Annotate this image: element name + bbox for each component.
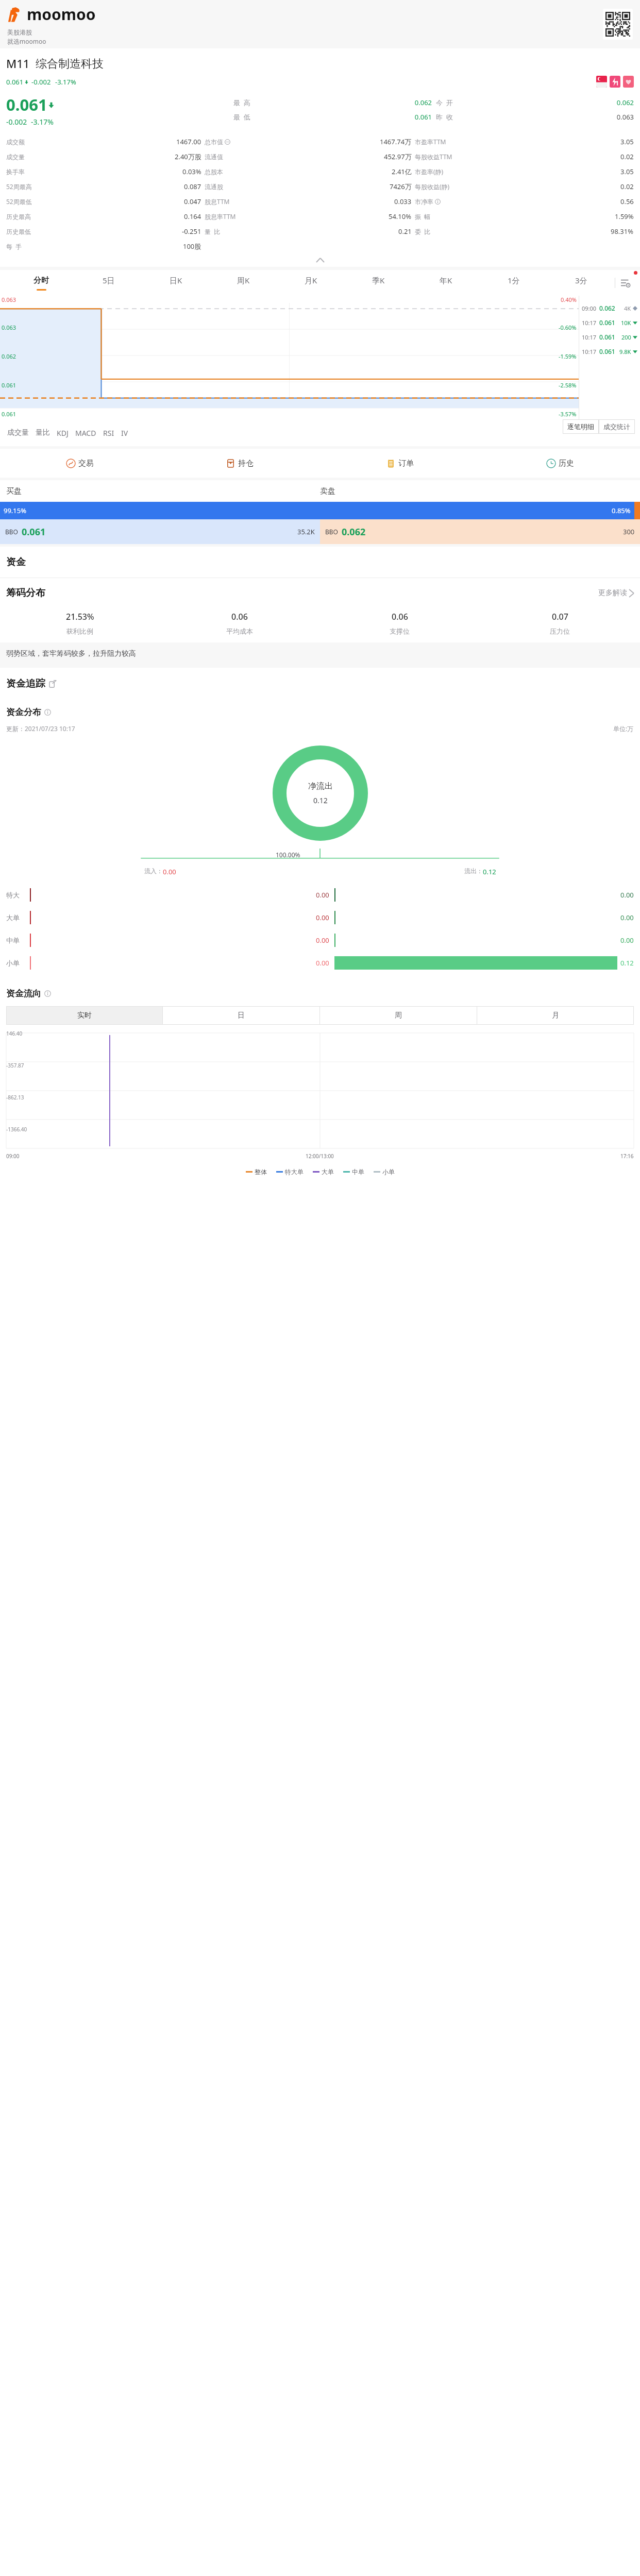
button[interactable]: BBO xyxy=(320,519,640,544)
staticText: 0.85% xyxy=(612,506,631,515)
button[interactable]: 日 xyxy=(163,1006,319,1025)
staticText: 0.00 xyxy=(316,936,329,945)
button[interactable]: 99.15% xyxy=(0,502,634,519)
button[interactable]: 10:17 xyxy=(582,344,637,359)
staticText: 0.56 xyxy=(620,197,634,206)
staticText: -1366.40 xyxy=(6,1126,27,1133)
staticText: 小单 xyxy=(382,1168,395,1176)
button[interactable]: 实时 xyxy=(6,1006,162,1025)
staticText: -0.002 xyxy=(6,117,27,127)
staticText: 0.061 xyxy=(599,347,615,355)
button[interactable]: 周K xyxy=(210,270,277,296)
button[interactable]: 持仓 xyxy=(160,449,319,478)
staticText: 净流出 xyxy=(308,781,333,791)
button[interactable]: IV xyxy=(121,428,135,438)
staticText: 0.062 xyxy=(342,526,366,538)
button[interactable]: 大单 xyxy=(313,1168,334,1176)
button[interactable]: 订单 xyxy=(319,449,480,478)
staticText: -0.002 xyxy=(31,77,51,87)
button[interactable]: 中单 xyxy=(343,1168,364,1176)
button[interactable]: KDJ xyxy=(57,428,75,438)
button[interactable]: 月 xyxy=(477,1006,634,1025)
button[interactable]: 10:17 xyxy=(582,330,637,344)
button[interactable]: BBO xyxy=(0,519,320,544)
staticText: 0.033 xyxy=(394,197,412,206)
staticText: 0.061 xyxy=(599,318,615,327)
button[interactable]: 历史 xyxy=(480,449,640,478)
staticText: 0.02 xyxy=(620,152,634,161)
staticText: 100股 xyxy=(183,242,201,251)
staticText: 0.062 xyxy=(2,352,16,360)
staticText: 2.41亿 xyxy=(392,167,412,176)
staticText: 美股港股 xyxy=(7,28,32,36)
staticText: 特大单 xyxy=(285,1168,304,1176)
staticText: 卖盘 xyxy=(320,486,634,496)
button[interactable]: 成交统计 xyxy=(599,419,635,434)
staticText: 日 xyxy=(238,1011,245,1020)
staticText: MACD xyxy=(75,428,96,438)
button[interactable]: 日K xyxy=(142,270,210,296)
staticText: 300 xyxy=(623,527,635,536)
button[interactable]: 10:17 xyxy=(582,315,637,330)
button[interactable]: 小单 xyxy=(374,1168,395,1176)
staticText: BBO xyxy=(325,528,338,536)
button[interactable]: 季K xyxy=(345,270,412,296)
staticText: 资金流向 xyxy=(6,988,41,999)
staticText: -357.87 xyxy=(6,1062,24,1069)
staticText: -2.58% xyxy=(559,381,577,389)
staticText: 0.063 xyxy=(535,112,634,122)
staticText: 量比 xyxy=(36,428,50,437)
button[interactable]: 年K xyxy=(412,270,480,296)
button[interactable]: 分时 xyxy=(7,270,75,296)
staticText: -3.17% xyxy=(55,77,76,87)
staticText: 54.10% xyxy=(389,212,412,221)
staticText: 0.061 xyxy=(2,381,16,389)
button[interactable]: RSI xyxy=(103,428,121,438)
staticText: 0.047 xyxy=(184,197,201,206)
staticText: 获利比例 xyxy=(66,627,93,635)
staticText: RSI xyxy=(103,428,114,438)
staticText: 0.21 xyxy=(398,227,412,236)
staticText: 0.40% xyxy=(561,296,577,303)
button[interactable]: 3分 xyxy=(547,270,615,296)
button[interactable]: 整体 xyxy=(246,1168,267,1176)
staticText: 成交统计 xyxy=(603,422,630,431)
button[interactable]: Badge xyxy=(610,76,620,88)
staticText: 0.164 xyxy=(184,212,201,221)
staticText: 实时 xyxy=(77,1011,92,1020)
staticText: 弱势区域，套牢筹码较多，拉升阻力较高 xyxy=(6,649,136,658)
button[interactable]: 筹码分布 xyxy=(6,578,634,608)
button[interactable]: 5日 xyxy=(75,270,142,296)
button[interactable]: 交易 xyxy=(0,449,160,478)
staticText: 历史最低 xyxy=(6,228,31,235)
staticText: 0.00 xyxy=(620,913,634,922)
button[interactable]: Chart settings xyxy=(615,270,636,296)
button[interactable]: MACD xyxy=(75,428,103,438)
staticText: 小单 xyxy=(6,959,27,967)
button[interactable]: 月K xyxy=(277,270,345,296)
staticText: 成交量 xyxy=(7,428,29,437)
button[interactable]: 量比 xyxy=(36,428,57,437)
button[interactable]: 特大单 xyxy=(276,1168,304,1176)
staticText: 0.062 xyxy=(535,98,634,107)
button[interactable]: Badge xyxy=(596,76,607,88)
staticText: 0.00 xyxy=(316,890,329,900)
button[interactable]: Badge xyxy=(623,76,634,88)
staticText: 市盈率(静) xyxy=(415,167,444,176)
staticText: BBO xyxy=(5,528,18,536)
staticText: 中单 xyxy=(352,1168,364,1176)
button[interactable]: 09:00 xyxy=(582,301,637,315)
button[interactable]: 逐笔明细 xyxy=(563,419,599,434)
button[interactable]: 1分 xyxy=(480,270,547,296)
button[interactable]: 成交量 xyxy=(7,428,36,437)
staticText: 资金追踪 xyxy=(6,677,45,690)
staticText: 市净率 xyxy=(415,198,433,206)
staticText: 1分 xyxy=(508,275,520,285)
staticText: 总股本 xyxy=(205,168,223,176)
staticText: 分时 xyxy=(33,276,49,285)
button[interactable]: 资金追踪 xyxy=(6,668,640,700)
staticText: 月 xyxy=(552,1011,559,1020)
staticText: 09:00 xyxy=(582,304,597,312)
button[interactable]: 周 xyxy=(320,1006,477,1025)
